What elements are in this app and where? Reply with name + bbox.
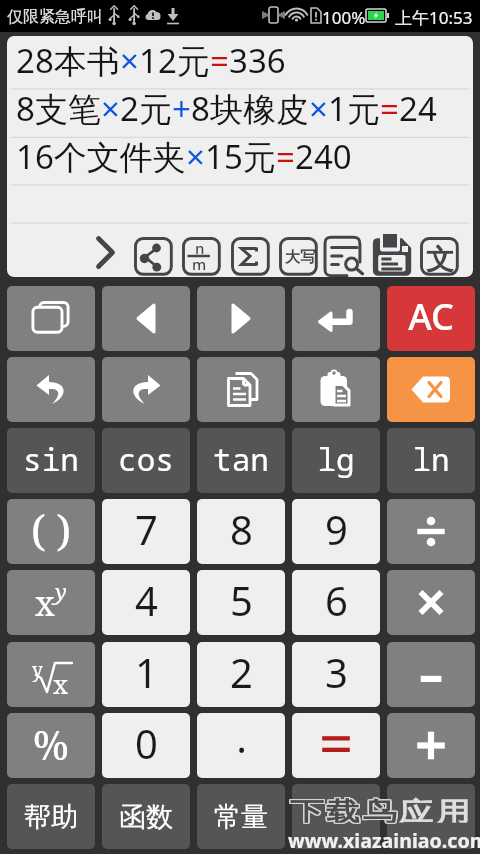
button[interactable]: Divide: [387, 499, 475, 564]
button[interactable]: Minus: [387, 642, 475, 707]
staticText: 1元: [328, 86, 380, 131]
button[interactable]: y-th root of x: [7, 642, 95, 707]
staticText: 7: [135, 502, 158, 556]
button[interactable]: Sum: [231, 237, 277, 277]
staticText: 鸟: [364, 796, 398, 824]
staticText: 鸟: [364, 795, 398, 823]
staticText: 载: [326, 795, 360, 823]
staticText: 下: [289, 795, 323, 823]
staticText: y: [32, 657, 43, 683]
button[interactable]: tan: [197, 428, 285, 493]
staticText: 大写: [285, 248, 315, 267]
staticText: .: [236, 713, 247, 764]
button[interactable]: 6: [292, 570, 380, 635]
button[interactable]: 5: [197, 570, 285, 635]
button[interactable]: Paste: [292, 357, 380, 422]
staticText: 8支笔: [16, 86, 101, 131]
staticText: 鸟: [362, 796, 396, 824]
staticText: 15元: [205, 134, 276, 179]
staticText: ×: [101, 86, 120, 131]
staticText: 载: [325, 795, 359, 823]
button[interactable]: 0: [102, 713, 190, 778]
button[interactable]: .: [197, 713, 285, 778]
staticText: AC: [408, 292, 454, 341]
button[interactable]: 常量: [197, 784, 285, 849]
staticText: 载: [326, 794, 360, 822]
staticText: 下: [291, 796, 325, 824]
staticText: ×: [309, 86, 328, 131]
staticText: 12元: [139, 38, 210, 83]
button[interactable]: Equals: [292, 713, 380, 778]
button[interactable]: ( ): [7, 499, 95, 564]
staticText: 下: [290, 795, 324, 823]
staticText: 100%: [322, 6, 366, 29]
button[interactable]: Multiply: [387, 570, 475, 635]
button[interactable]: Fraction: [182, 237, 228, 277]
staticText: sin: [23, 438, 79, 480]
staticText: 28本书: [16, 38, 120, 83]
button[interactable]: Backspace: [387, 357, 475, 422]
button[interactable]: Left: [102, 286, 190, 351]
staticText: %: [33, 717, 69, 771]
button[interactable]: 帮助: [7, 784, 95, 849]
staticText: 3: [325, 645, 348, 699]
staticText: =: [210, 38, 229, 83]
button[interactable]: Share: [134, 237, 180, 277]
button[interactable]: 3: [292, 642, 380, 707]
button[interactable]: 7: [102, 499, 190, 564]
staticText: 常量: [214, 800, 268, 834]
staticText: 鸟: [362, 794, 396, 822]
button[interactable]: Plus: [387, 713, 475, 778]
staticText: 16个文件夹: [16, 134, 186, 179]
button[interactable]: Redo: [102, 357, 190, 422]
staticText: x: [53, 666, 69, 701]
staticText: 下: [290, 796, 324, 824]
staticText: ln: [412, 438, 450, 480]
button[interactable]: ln: [387, 428, 475, 493]
button[interactable]: Undo: [7, 357, 95, 422]
button[interactable]: 2: [197, 642, 285, 707]
staticText: 2: [230, 645, 253, 699]
button[interactable]: lg: [292, 428, 380, 493]
staticText: 函数: [119, 800, 173, 834]
button[interactable]: 9: [292, 499, 380, 564]
staticText: 下: [289, 794, 323, 822]
button[interactable]: Language: [420, 237, 466, 277]
staticText: 载: [327, 796, 361, 824]
staticText: ( ): [31, 501, 71, 558]
button[interactable]: sin: [7, 428, 95, 493]
button[interactable]: cos: [102, 428, 190, 493]
button[interactable]: 8: [197, 499, 285, 564]
button[interactable]: 1: [102, 642, 190, 707]
button[interactable]: Screens: [7, 286, 95, 351]
button[interactable]: Enter: [292, 286, 380, 351]
button[interactable]: 函数: [102, 784, 190, 849]
staticText: 4: [135, 573, 158, 627]
button[interactable]: Capitalize: [279, 237, 325, 277]
staticText: ×: [120, 38, 139, 83]
staticText: 鸟: [362, 795, 396, 823]
button[interactable]: 设置: [387, 784, 475, 849]
button[interactable]: 单位: [292, 784, 380, 849]
button[interactable]: 4: [102, 570, 190, 635]
button[interactable]: x to the power of y: [7, 570, 95, 635]
button[interactable]: %: [7, 713, 95, 778]
button[interactable]: AC: [387, 286, 475, 351]
staticText: 下: [289, 796, 323, 824]
staticText: 336: [229, 38, 286, 83]
button[interactable]: Copy: [197, 357, 285, 422]
staticText: 8: [230, 502, 253, 556]
staticText: 应: [399, 795, 433, 823]
button[interactable]: More: [91, 234, 125, 268]
staticText: tan: [213, 438, 269, 480]
button[interactable]: Save: [375, 237, 421, 277]
button[interactable]: Right: [197, 286, 285, 351]
staticText: x: [35, 580, 55, 626]
staticText: 帮助: [24, 800, 78, 834]
staticText: 8块橡皮: [191, 86, 309, 131]
staticText: +: [172, 86, 191, 131]
button[interactable]: Search history: [320, 237, 366, 277]
staticText: cos: [118, 438, 174, 480]
staticText: 用: [436, 795, 470, 823]
staticText: 1: [135, 645, 158, 699]
